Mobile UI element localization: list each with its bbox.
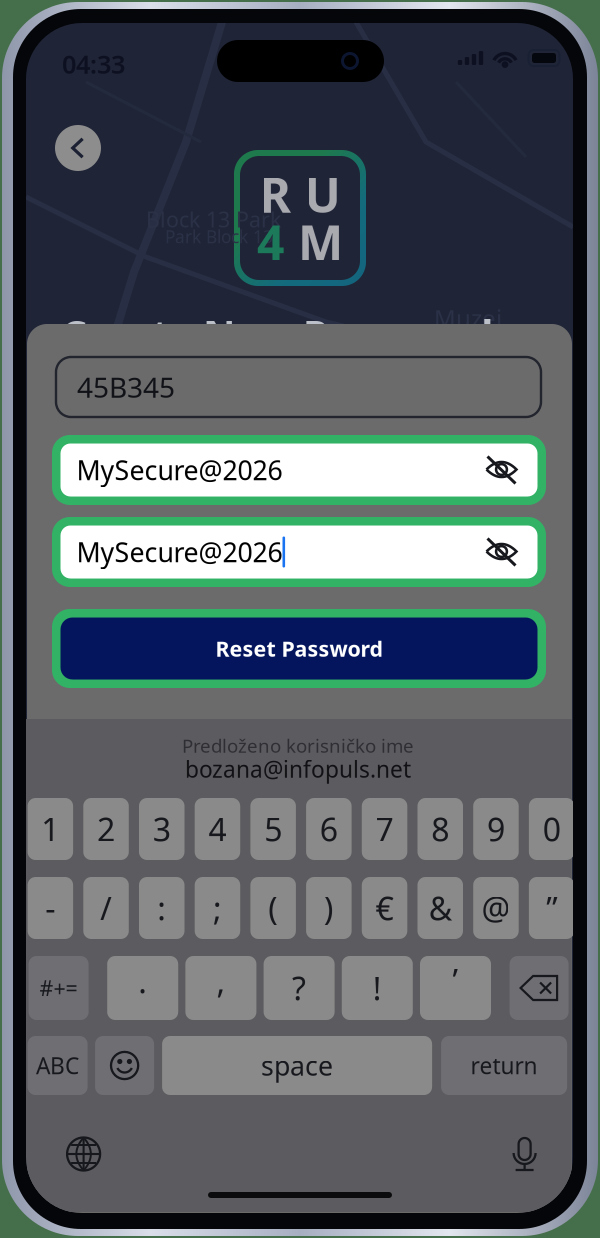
staticText: bozana@infopuls.net: [185, 754, 411, 784]
button[interactable]: 5: [250, 798, 296, 860]
staticText: 9: [487, 808, 505, 850]
staticText: ABC: [36, 1050, 79, 1080]
staticText: ): [324, 887, 334, 929]
staticText: M: [298, 210, 343, 274]
button[interactable]: ABC: [28, 1036, 88, 1095]
button[interactable]: Reset Password: [52, 609, 546, 688]
staticText: ,: [216, 960, 225, 1002]
staticText: €: [376, 887, 394, 929]
staticText: 0: [543, 808, 561, 850]
button[interactable]: Delete: [510, 956, 569, 1020]
button[interactable]: 7: [362, 798, 407, 860]
staticText: .: [138, 960, 147, 1002]
button[interactable]: 4: [195, 798, 240, 860]
staticText: 5: [264, 808, 282, 850]
button[interactable]: ;: [195, 877, 240, 939]
button[interactable]: -: [28, 877, 73, 939]
staticText: ’: [452, 959, 458, 1001]
button[interactable]: &: [417, 877, 463, 939]
staticText: ”: [546, 887, 557, 929]
button[interactable]: 45B345: [56, 357, 541, 417]
staticText: (: [268, 887, 278, 929]
button[interactable]: 0: [529, 798, 574, 860]
button[interactable]: !: [342, 956, 413, 1020]
button[interactable]: #+=: [29, 956, 89, 1020]
button[interactable]: 3: [139, 798, 184, 860]
staticText: ;: [213, 887, 222, 929]
button[interactable]: ): [306, 877, 352, 939]
staticText: MySecure@2026: [76, 534, 282, 570]
staticText: Predloženo korisničko ime: [182, 733, 414, 758]
staticText: Park Block 13: [165, 225, 273, 248]
button[interactable]: @: [473, 877, 519, 939]
staticText: Block 13 Park: [146, 205, 281, 233]
button[interactable]: MySecure@2026: [52, 435, 546, 505]
button[interactable]: ,: [185, 956, 256, 1020]
staticText: !: [373, 967, 382, 1009]
staticText: R: [259, 162, 290, 226]
button[interactable]: Switch keyboard: [60, 1132, 108, 1176]
button[interactable]: 9: [473, 798, 519, 860]
staticText: &: [429, 887, 452, 929]
button[interactable]: Emoji: [95, 1036, 154, 1095]
staticText: :: [157, 887, 166, 929]
staticText: 8: [431, 808, 449, 850]
button[interactable]: Back: [55, 125, 101, 171]
button[interactable]: .: [107, 956, 178, 1020]
staticText: Reset Password: [215, 634, 382, 663]
button[interactable]: space: [162, 1036, 432, 1095]
staticText: 1: [41, 808, 59, 850]
button[interactable]: :: [139, 877, 184, 939]
button[interactable]: ?: [264, 956, 335, 1020]
staticText: Muzej Savrem: [434, 302, 517, 366]
staticText: @: [481, 887, 510, 929]
button[interactable]: MySecure@2026: [52, 517, 546, 587]
staticText: 3: [153, 808, 171, 850]
staticText: return: [471, 1050, 538, 1080]
staticText: 2: [97, 808, 115, 850]
button[interactable]: return: [441, 1036, 567, 1095]
button[interactable]: 6: [306, 798, 352, 860]
button[interactable]: ’: [420, 956, 491, 1020]
staticText: 04:33: [62, 47, 125, 81]
staticText: ?: [292, 967, 306, 1009]
button[interactable]: (: [250, 877, 296, 939]
staticText: -: [45, 887, 55, 929]
button[interactable]: €: [362, 877, 407, 939]
button[interactable]: 8: [417, 798, 463, 860]
staticText: U: [304, 162, 340, 226]
staticText: 4: [257, 210, 284, 274]
staticText: /: [100, 887, 112, 929]
button[interactable]: Dictate: [501, 1132, 549, 1176]
staticText: #+=: [40, 974, 78, 1002]
button[interactable]: 1: [28, 798, 73, 860]
staticText: 7: [376, 808, 394, 850]
button[interactable]: /: [83, 877, 129, 939]
staticText: 6: [320, 808, 338, 850]
staticText: space: [261, 1048, 333, 1083]
button[interactable]: ”: [529, 877, 574, 939]
staticText: MySecure@2026: [76, 452, 282, 488]
staticText: 4: [208, 808, 226, 850]
button[interactable]: 2: [83, 798, 129, 860]
staticText: 45B345: [77, 368, 175, 406]
staticText: Create New Password: [61, 307, 493, 360]
